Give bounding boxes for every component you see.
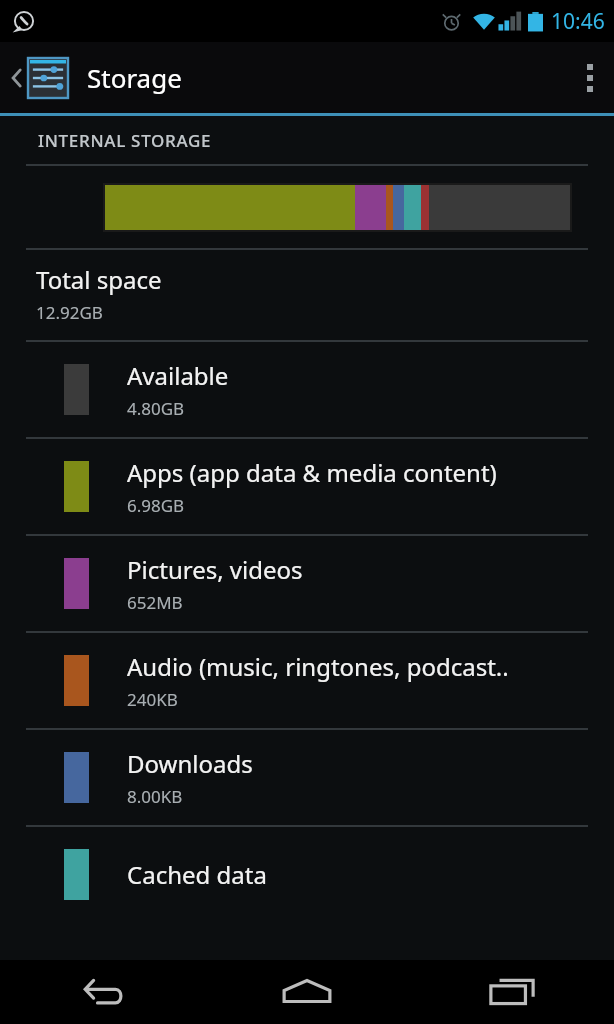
staticText: Available [127, 359, 229, 392]
staticText: Downloads [127, 747, 253, 780]
button[interactable]: Cached data [0, 827, 614, 922]
staticText: 6.98GB [127, 494, 185, 517]
staticText: 10:46 [551, 7, 605, 36]
staticText: INTERNAL STORAGE [38, 129, 212, 152]
staticText: 12.92GB [36, 301, 103, 324]
button[interactable]: Storage [0, 42, 614, 113]
staticText: 4.80GB [127, 397, 185, 420]
button[interactable]: Pictures, videos [0, 536, 614, 631]
button[interactable] [0, 166, 614, 248]
staticText: 652MB [127, 591, 183, 614]
staticText: Storage [87, 60, 182, 95]
button[interactable]: Apps (app data & media content) [0, 439, 614, 534]
staticText: Total space [36, 263, 162, 296]
button[interactable]: Back [0, 960, 204, 1024]
button[interactable]: Available [0, 342, 614, 437]
button[interactable]: More options [566, 42, 614, 113]
staticText: Audio (music, ringtones, podcast.. [127, 650, 509, 683]
button[interactable]: Recent apps [409, 960, 614, 1024]
staticText: Apps (app data & media content) [127, 456, 497, 489]
button[interactable]: Total space [0, 250, 614, 340]
staticText: 8.00KB [127, 785, 183, 808]
staticText: Pictures, videos [127, 553, 303, 586]
staticText: Cached data [127, 858, 267, 891]
staticText: 240KB [127, 688, 178, 711]
button[interactable]: Audio (music, ringtones, podcast.. [0, 633, 614, 728]
button[interactable]: Home [204, 960, 409, 1024]
button[interactable]: Downloads [0, 730, 614, 825]
